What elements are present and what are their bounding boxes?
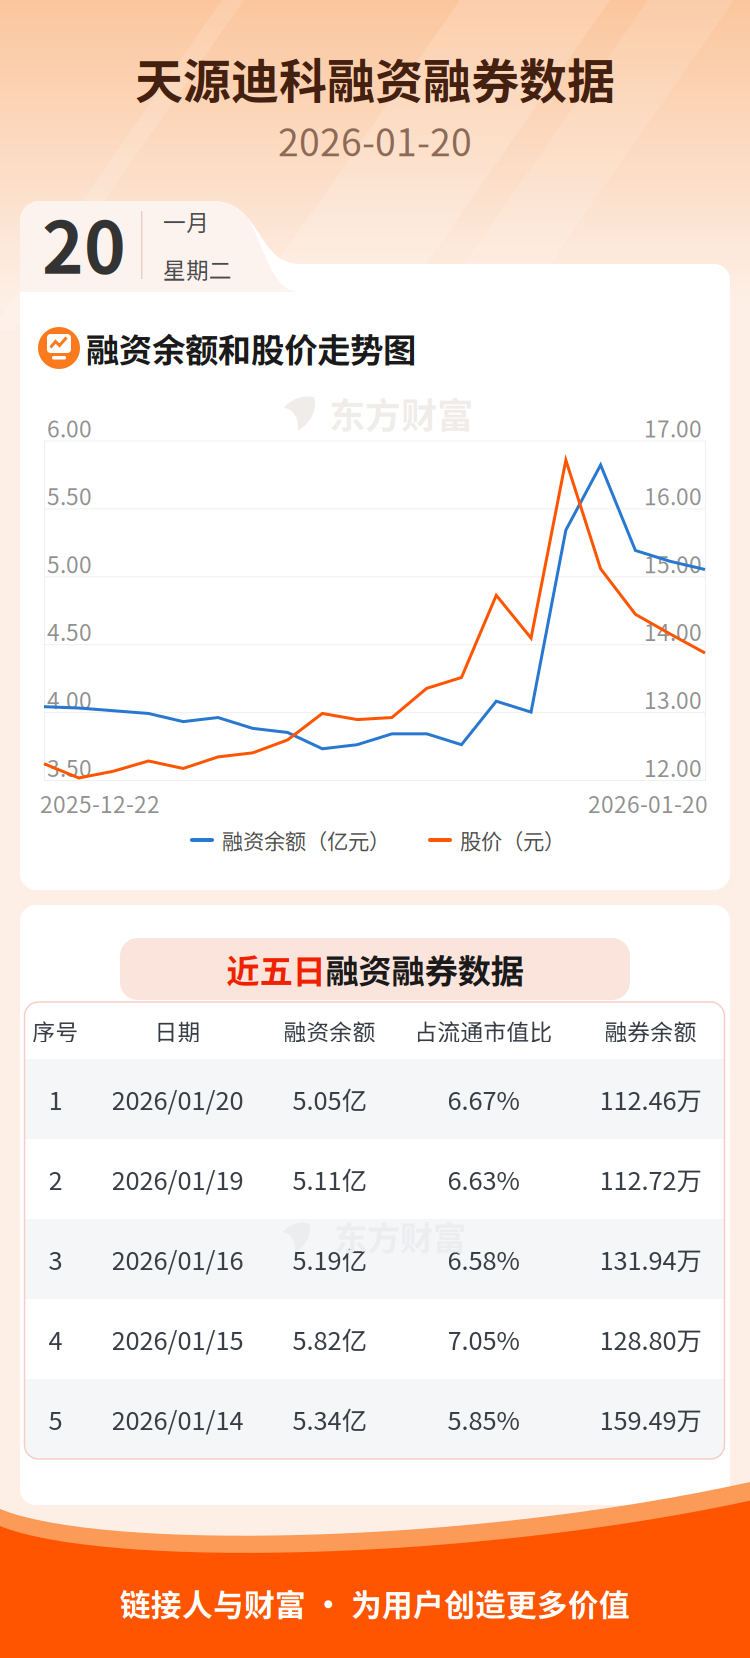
staticText: 3	[48, 1241, 62, 1277]
staticText: 4.00	[47, 683, 92, 715]
button[interactable]: 序号	[24, 1002, 724, 1059]
staticText: 15.00	[644, 547, 702, 580]
staticText: 12.00	[644, 751, 702, 783]
staticText: 5.85%	[447, 1401, 519, 1437]
staticText: 2026/01/14	[111, 1401, 243, 1437]
staticText: 4.50	[47, 615, 92, 648]
staticText: 131.94万	[599, 1241, 701, 1277]
staticText: 2	[48, 1161, 62, 1197]
staticText: 16.00	[644, 479, 702, 512]
staticText: 13.00	[644, 683, 702, 715]
staticText: 近五日	[226, 945, 325, 993]
staticText: 6.58%	[447, 1241, 519, 1277]
staticText: 2026/01/15	[111, 1321, 243, 1357]
staticText: 融券余额	[604, 1014, 696, 1047]
staticText: 东方财富	[329, 387, 473, 439]
staticText: 一月	[163, 205, 209, 237]
staticText: 3.50	[47, 751, 92, 783]
staticText: 日期	[154, 1014, 200, 1047]
staticText: 链接人与财富 · 为用户创造更多价值	[120, 1581, 630, 1625]
button[interactable]: 5	[24, 1379, 724, 1459]
button[interactable]: 1	[24, 1059, 724, 1139]
button[interactable]: 4	[24, 1299, 724, 1379]
staticText: 2026/01/20	[111, 1081, 243, 1117]
staticText: 融资余额（亿元）	[222, 825, 390, 855]
staticText: 14.00	[644, 615, 702, 648]
staticText: 序号	[32, 1014, 78, 1047]
staticText: 5.82亿	[292, 1321, 366, 1357]
staticText: 17.00	[644, 411, 702, 444]
staticText: 5	[48, 1401, 62, 1437]
staticText: 5.50	[47, 479, 92, 512]
staticText: 4	[48, 1321, 62, 1357]
staticText: 112.72万	[599, 1161, 701, 1197]
staticText: 股价（元）	[460, 825, 565, 855]
staticText: 6.67%	[447, 1081, 519, 1117]
staticText: 128.80万	[599, 1321, 701, 1357]
staticText: 112.46万	[599, 1081, 701, 1117]
staticText: 7.05%	[447, 1321, 519, 1357]
staticText: 天源迪科融资融券数据	[135, 43, 615, 113]
staticText: 5.19亿	[292, 1241, 366, 1277]
staticText: 6.00	[47, 411, 92, 444]
staticText: 6.63%	[447, 1161, 519, 1197]
staticText: 融资余额	[283, 1014, 375, 1047]
staticText: 2025-12-22	[40, 787, 160, 819]
staticText: 占流通市值比	[414, 1014, 552, 1047]
staticText: 5.11亿	[292, 1161, 366, 1197]
staticText: 2026/01/19	[111, 1161, 243, 1197]
staticText: 5.05亿	[292, 1081, 366, 1117]
staticText: 1	[48, 1081, 62, 1117]
staticText: 东方财富	[334, 1212, 466, 1260]
staticText: 5.34亿	[292, 1401, 366, 1437]
staticText: 5.00	[47, 547, 92, 580]
staticText: 159.49万	[599, 1401, 701, 1437]
staticText: 2026-01-20	[278, 113, 472, 167]
staticText: 2026-01-20	[588, 787, 708, 819]
button[interactable]: 2	[24, 1139, 724, 1219]
staticText: 融资余额和股价走势图	[86, 324, 416, 372]
staticText: 融资融券数据	[325, 945, 523, 993]
staticText: 2026/01/16	[111, 1241, 243, 1277]
staticText: 20	[42, 192, 126, 294]
button[interactable]: 3	[24, 1219, 724, 1299]
staticText: 星期二	[163, 252, 232, 285]
